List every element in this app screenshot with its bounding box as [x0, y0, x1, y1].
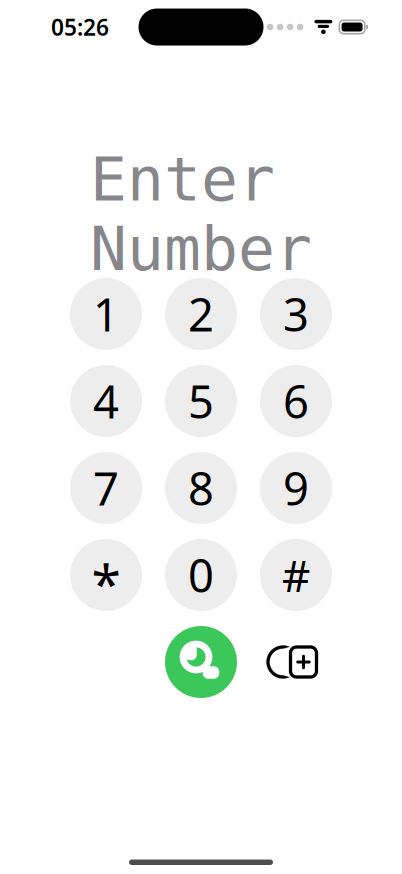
button[interactable]: # — [260, 539, 332, 611]
button[interactable]: Call — [165, 626, 237, 698]
staticText: # — [282, 546, 310, 604]
staticText: 9 — [283, 458, 309, 518]
staticText: 6 — [283, 371, 309, 431]
button[interactable]: 8 — [165, 452, 237, 524]
staticText: 8 — [188, 458, 214, 518]
button[interactable]: 0 — [165, 539, 237, 611]
button[interactable]: 9 — [260, 452, 332, 524]
staticText: 0 — [188, 545, 214, 605]
button[interactable]: Delete — [260, 626, 332, 698]
staticText: 1 — [93, 284, 119, 344]
button[interactable]: 3 — [260, 278, 332, 350]
button[interactable]: 5 — [165, 365, 237, 437]
staticText: Enter Number — [90, 144, 312, 284]
button[interactable]: 4 — [70, 365, 142, 437]
button[interactable]: 6 — [260, 365, 332, 437]
staticText: 05:26 — [51, 12, 109, 42]
staticText: 4 — [93, 371, 119, 431]
button[interactable]: 7 — [70, 452, 142, 524]
staticText: * — [91, 547, 120, 618]
staticText: 7 — [93, 458, 119, 518]
staticText: 5 — [188, 371, 214, 431]
button[interactable]: 1 — [70, 278, 142, 350]
staticText: 3 — [283, 284, 309, 344]
button[interactable]: 2 — [165, 278, 237, 350]
button[interactable]: * — [70, 539, 142, 611]
staticText: 2 — [188, 284, 214, 344]
